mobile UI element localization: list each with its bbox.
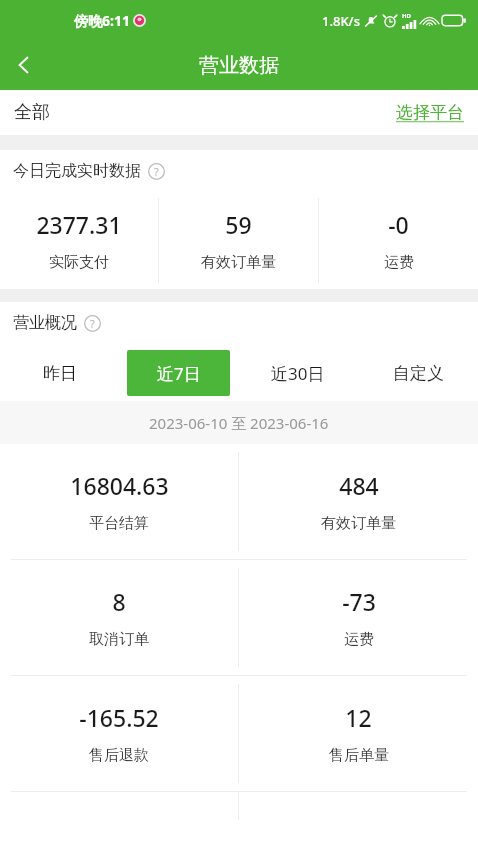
staticText: 运费 [344, 630, 374, 649]
button[interactable]: 近30日 [246, 350, 350, 396]
staticText: 1.8K/s [322, 12, 360, 30]
button[interactable]: -73 [239, 560, 478, 675]
staticText: 59 [225, 209, 252, 240]
staticText: 近7日 [157, 362, 201, 385]
button[interactable]: 12 [239, 676, 478, 791]
button[interactable]: 全部 [14, 101, 50, 124]
staticText: 今日完成实时数据 [13, 161, 141, 181]
button[interactable]: Back [0, 41, 48, 89]
staticText: 8 [112, 586, 126, 617]
staticText: 自定义 [393, 363, 444, 384]
staticText: 2377.31 [36, 209, 122, 240]
staticText: -0 [388, 209, 409, 240]
staticText: 营业概况 [13, 313, 77, 333]
staticText: HD [402, 12, 411, 20]
staticText: 运费 [384, 253, 414, 272]
staticText: ? [90, 316, 95, 331]
button[interactable]: 8 [0, 560, 238, 675]
staticText: -73 [342, 586, 376, 617]
button[interactable]: Help [148, 163, 165, 180]
staticText: 傍晚6:11 [74, 11, 130, 30]
staticText: 选择平台 [396, 102, 464, 123]
staticText: 昨日 [43, 363, 77, 384]
staticText: ? [154, 164, 159, 179]
button[interactable]: 2377.31 [0, 192, 158, 289]
staticText: 16804.63 [70, 470, 169, 501]
staticText: 实际支付 [49, 253, 109, 272]
staticText: 484 [339, 470, 379, 501]
staticText: -165.52 [79, 702, 159, 733]
button[interactable]: 近7日 [127, 350, 230, 396]
button[interactable]: 484 [239, 444, 478, 559]
button[interactable]: -165.52 [0, 676, 238, 791]
button[interactable]: -0 [319, 192, 478, 289]
staticText: 2023-06-10 至 2023-06-16 [149, 413, 329, 433]
staticText: 平台结算 [89, 514, 149, 533]
staticText: 取消订单 [89, 630, 149, 649]
staticText: 有效订单量 [321, 514, 396, 533]
button[interactable]: 昨日 [8, 350, 111, 396]
staticText: 售后退款 [89, 746, 149, 765]
staticText: 近30日 [271, 362, 325, 385]
button[interactable]: 16804.63 [0, 444, 238, 559]
staticText: 营业数据 [199, 53, 279, 78]
button[interactable]: Help [84, 315, 101, 332]
button[interactable]: 自定义 [366, 350, 470, 396]
button[interactable]: 59 [159, 192, 318, 289]
staticText: 有效订单量 [201, 253, 276, 272]
staticText: 全部 [14, 101, 50, 124]
staticText: 12 [345, 702, 372, 733]
button[interactable]: 选择平台 [396, 102, 464, 123]
staticText: 售后单量 [329, 746, 389, 765]
